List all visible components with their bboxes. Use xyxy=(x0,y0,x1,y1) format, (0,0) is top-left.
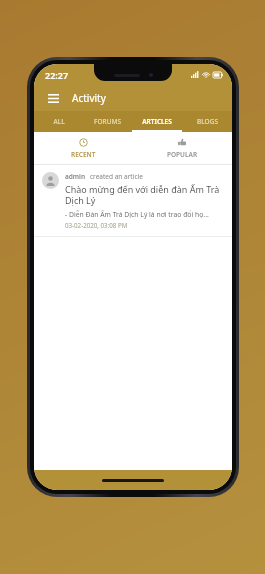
staticText: RECENT xyxy=(71,150,96,159)
button[interactable]: RECENT xyxy=(34,132,133,165)
staticText: - Diễn Đàn Ấm Trà Dịch Lý là nơi trao đổ… xyxy=(65,210,209,219)
button[interactable]: POPULAR xyxy=(133,132,232,165)
staticText: 22:27 xyxy=(45,69,69,81)
staticText: ARTICLES xyxy=(142,117,172,126)
button[interactable]: ARTICLES xyxy=(132,111,182,132)
staticText: BLOGS xyxy=(197,117,218,126)
button[interactable]: FORUMS xyxy=(83,111,132,132)
staticText: created an article xyxy=(90,172,143,181)
staticText: admin xyxy=(65,172,86,181)
staticText: Chào mừng đến với diễn đàn Ấm Trà Dịch L… xyxy=(65,183,222,207)
button[interactable]: ALL xyxy=(34,111,83,132)
staticText: 03-02-2020, 03:08 PM xyxy=(65,221,128,229)
button[interactable]: admin xyxy=(34,165,232,236)
button[interactable]: BLOGS xyxy=(182,111,232,132)
staticText: Activity xyxy=(72,91,106,105)
button[interactable]: Open navigation menu xyxy=(44,89,62,107)
staticText: FORUMS xyxy=(94,117,121,126)
staticText: ALL xyxy=(53,117,65,126)
staticText: POPULAR xyxy=(167,150,198,159)
